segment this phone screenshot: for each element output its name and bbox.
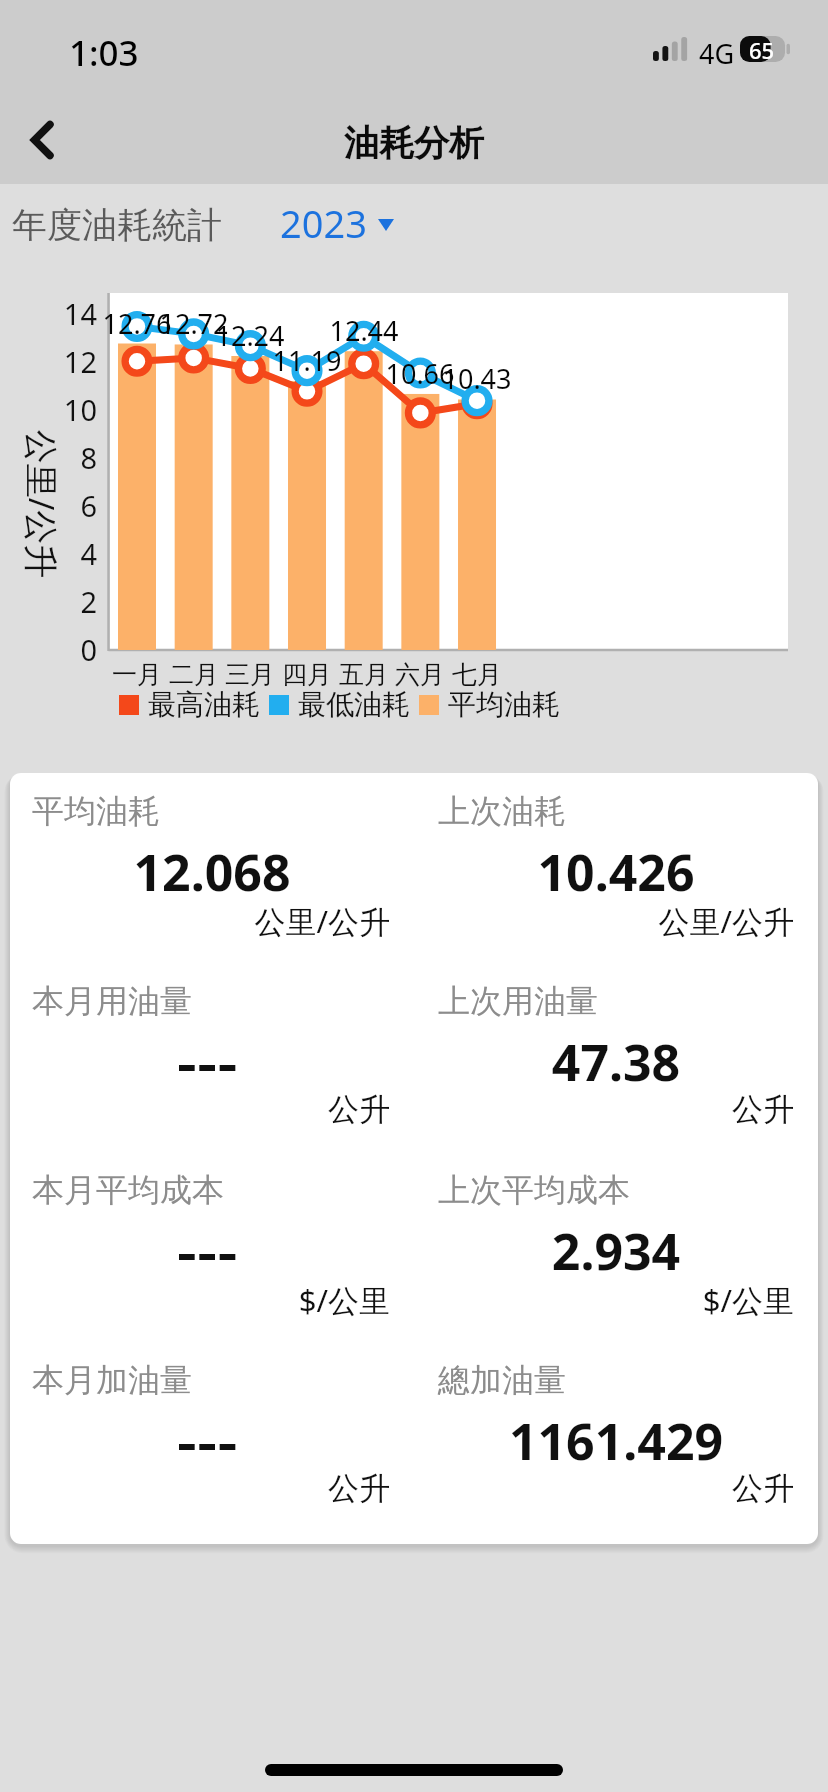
staticText: 五月 <box>319 659 409 690</box>
staticText: 最低油耗 <box>298 687 410 722</box>
staticText: 1:03 <box>69 29 139 77</box>
staticText: 6 <box>37 486 97 525</box>
button[interactable]: 總加油量 <box>414 1358 818 1543</box>
staticText: 4G <box>699 35 735 72</box>
staticText: 14 <box>37 294 97 333</box>
staticText: 公里/公升 <box>10 900 390 942</box>
staticText: 65 <box>749 35 775 61</box>
staticText: 12.76 <box>87 305 187 342</box>
staticText: 12.44 <box>314 312 414 349</box>
staticText: 12.24 <box>200 317 300 354</box>
staticText: 12 <box>37 342 97 381</box>
button[interactable]: 本月平均成本 <box>10 1168 414 1353</box>
staticText: 8 <box>37 438 97 477</box>
staticText: 最高油耗 <box>148 687 260 722</box>
staticText: 12.068 <box>10 838 414 906</box>
staticText: 平均油耗 <box>448 687 560 722</box>
button[interactable]: Back <box>5 104 77 176</box>
staticText: 公里/公升 <box>414 900 794 942</box>
staticText: 四月 <box>262 659 352 690</box>
staticText: 平均油耗 <box>32 791 160 831</box>
staticText: 總加油量 <box>438 1360 566 1400</box>
staticText: 10 <box>37 390 97 429</box>
staticText: 10.66 <box>370 355 470 392</box>
button[interactable]: 上次用油量 <box>414 979 818 1164</box>
staticText: 公升 <box>414 1090 794 1129</box>
button[interactable]: 上次平均成本 <box>414 1168 818 1353</box>
staticText: 上次用油量 <box>438 981 598 1021</box>
button[interactable]: 本月加油量 <box>10 1358 414 1543</box>
staticText: 10.426 <box>414 838 818 906</box>
staticText: 2 <box>37 582 97 621</box>
staticText: 上次油耗 <box>438 791 566 831</box>
staticText: 公里/公升 <box>21 404 65 604</box>
staticText: 六月 <box>375 659 465 690</box>
staticText: 1161.429 <box>414 1407 818 1475</box>
staticText: 本月平均成本 <box>32 1170 224 1210</box>
staticText: 12.72 <box>144 305 244 342</box>
staticText: 公升 <box>414 1469 794 1508</box>
staticText: 三月 <box>205 659 295 690</box>
button[interactable]: 平均油耗 <box>10 789 414 974</box>
staticText: 公升 <box>10 1090 390 1129</box>
button[interactable]: 本月用油量 <box>10 979 414 1164</box>
staticText: 本月用油量 <box>32 981 192 1021</box>
staticText: 2023 <box>280 197 367 249</box>
staticText: 0 <box>37 630 97 669</box>
staticText: 年度油耗統計 <box>12 203 222 247</box>
button[interactable]: 上次油耗 <box>414 789 818 974</box>
staticText: 油耗分析 <box>0 121 828 165</box>
staticText: 10.43 <box>427 360 527 397</box>
staticText: 公升 <box>10 1469 390 1508</box>
staticText: $/公里 <box>10 1279 390 1321</box>
staticText: 本月加油量 <box>32 1360 192 1400</box>
button[interactable]: 2023 <box>280 195 394 255</box>
staticText: 11.19 <box>257 342 357 379</box>
staticText: 47.38 <box>414 1028 818 1096</box>
staticText: 上次平均成本 <box>438 1170 630 1210</box>
staticText: $/公里 <box>414 1279 794 1321</box>
staticText: 一月 <box>92 659 182 690</box>
staticText: 4 <box>37 534 97 573</box>
staticText: 2.934 <box>414 1217 818 1285</box>
staticText: 二月 <box>149 659 239 690</box>
staticText: 七月 <box>432 659 522 690</box>
